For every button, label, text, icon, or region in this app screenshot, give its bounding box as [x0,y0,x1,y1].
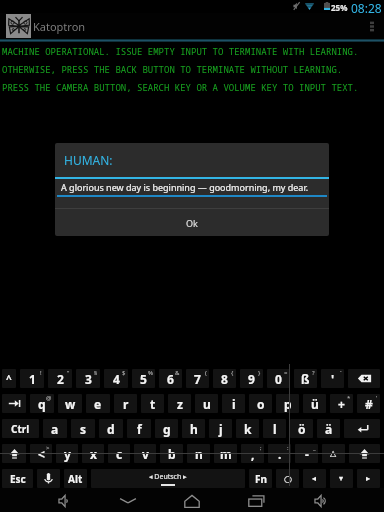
button[interactable]: ä [317,419,340,438]
staticText: k [244,421,252,437]
button[interactable]: t [141,394,164,413]
staticText: Esc [10,472,26,486]
staticText: + [338,396,345,412]
staticText: 2 [57,371,64,387]
button[interactable] [2,444,26,463]
staticText: > [46,444,50,452]
button[interactable]: ○ [276,469,299,488]
button[interactable]: b [160,444,183,463]
button[interactable]: r [114,394,137,413]
staticText: ; [260,444,262,452]
button[interactable]: Volume up [292,488,348,512]
button[interactable]: 8 [213,369,236,388]
button[interactable]: s [71,419,95,438]
button[interactable]: e [86,394,110,413]
button[interactable]: z [168,394,191,413]
button[interactable]: Ctrl [2,419,39,438]
button[interactable]: 1 [20,369,44,388]
button[interactable]: More options [352,13,384,39]
button[interactable]: Ok [55,209,329,236]
staticText: d [107,421,115,437]
staticText: ` [340,369,342,377]
button[interactable]: ü [303,394,326,413]
button[interactable]: 9 [240,369,263,388]
button[interactable]: Alt [64,469,87,488]
button[interactable]: v [134,444,156,463]
staticText: 08:28 [351,0,382,13]
staticText: o [257,396,265,412]
button[interactable] [2,394,26,413]
button[interactable]: ^ [2,369,16,388]
staticText: { [231,369,234,377]
staticText: ä [325,421,333,437]
button[interactable]: k [236,419,259,438]
button[interactable]: 2 [48,369,72,388]
button[interactable]: Recents [228,488,284,512]
staticText: w [65,396,76,412]
staticText: 9 [248,371,255,387]
staticText: z [177,396,183,412]
button[interactable]: , [241,444,264,463]
button[interactable]: Esc [2,469,33,488]
button[interactable] [348,369,380,388]
staticText: 25% [331,2,348,13]
button[interactable]: # [357,394,380,413]
button[interactable]: ◂ Deutsch ▸ [91,469,245,488]
staticText: A glorious new day is beginning — goodmo… [61,181,309,193]
staticText: = [284,369,288,377]
staticText: j [219,421,223,437]
staticText: ö [298,421,306,437]
button[interactable]: c [108,444,130,463]
button[interactable]: + [330,394,353,413]
staticText: . [278,446,282,462]
staticText: " [67,369,70,377]
button[interactable] [37,469,60,488]
staticText: ▾ [339,474,344,483]
button[interactable]: n [187,444,210,463]
staticText: Fn [255,472,267,486]
button[interactable]: 5 [132,369,155,388]
button[interactable]: . [268,444,291,463]
button[interactable]: 3 [76,369,100,388]
button[interactable]: ▸ [357,469,380,488]
button[interactable]: 4 [104,369,128,388]
button[interactable]: Volume down [36,488,92,512]
staticText: PRESS THE CAMERA BUTTON, SEARCH KEY OR A… [2,81,359,93]
button[interactable]: f [127,419,151,438]
button[interactable]: △ [322,444,345,463]
button[interactable]: ◂ [303,469,326,488]
button[interactable]: m [214,444,237,463]
button[interactable]: h [182,419,205,438]
button[interactable]: a [43,419,67,438]
button[interactable]: < [30,444,52,463]
button[interactable]: - [295,444,318,463]
button[interactable]: 7 [186,369,209,388]
button[interactable]: o [249,394,272,413]
button[interactable]: u [195,394,218,413]
button[interactable]: i [222,394,245,413]
button[interactable]: w [58,394,82,413]
button[interactable]: Fn [249,469,272,488]
button[interactable]: ▾ [330,469,353,488]
staticText: m [220,446,232,462]
button[interactable]: q [30,394,54,413]
button[interactable]: Back [100,488,156,512]
button[interactable]: 0 [267,369,290,388]
button[interactable]: j [209,419,232,438]
button[interactable]: l [263,419,286,438]
button[interactable] [344,419,380,438]
button[interactable]: d [99,419,123,438]
button[interactable]: ö [290,419,313,438]
button[interactable]: ß [294,369,317,388]
button[interactable]: Home [164,488,220,512]
button[interactable]: ' [321,369,344,388]
staticText: MACHINE OPERATIONAL. ISSUE EMPTY INPUT T… [2,45,359,57]
staticText: l [273,421,277,437]
button[interactable]: g [155,419,178,438]
button[interactable] [349,444,380,463]
staticText: ' [331,371,335,387]
button[interactable]: p [276,394,299,413]
button[interactable]: 6 [159,369,182,388]
button[interactable]: x [82,444,104,463]
button[interactable]: y [56,444,78,463]
